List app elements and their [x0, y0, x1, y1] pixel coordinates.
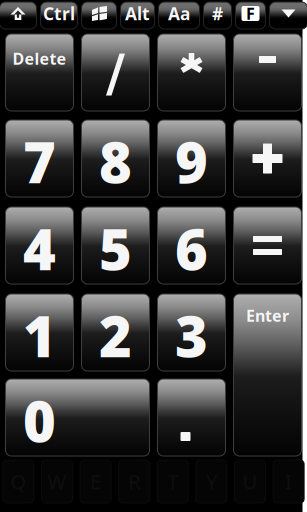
- staticText: E: [90, 468, 101, 495]
- button[interactable]: Plus: [233, 120, 301, 197]
- staticText: R: [128, 468, 140, 495]
- staticText: 4: [23, 211, 56, 286]
- staticText: 6: [175, 211, 208, 286]
- button[interactable]: 2: [81, 294, 149, 371]
- staticText: Aa: [168, 2, 190, 25]
- staticText: 8: [99, 124, 132, 199]
- button[interactable]: Alt: [120, 2, 154, 29]
- button[interactable]: Minus: [233, 34, 301, 111]
- button[interactable]: Delete: [5, 34, 73, 111]
- staticText: Alt: [125, 2, 150, 25]
- button[interactable]: Divide: [81, 34, 149, 111]
- staticText: 5: [99, 211, 132, 286]
- button[interactable]: Symbols: [203, 2, 231, 29]
- staticText: 1: [23, 298, 56, 373]
- button[interactable]: Windows: [81, 2, 116, 29]
- button[interactable]: 6: [157, 207, 225, 284]
- staticText: Delete: [12, 48, 66, 69]
- staticText: I: [285, 468, 292, 495]
- button[interactable]: 1: [5, 294, 73, 371]
- button[interactable]: Multiply: [157, 34, 225, 111]
- button[interactable]: 5: [81, 207, 149, 284]
- button[interactable]: Equals: [233, 207, 301, 284]
- staticText: 7: [23, 124, 56, 199]
- staticText: F: [246, 3, 255, 24]
- staticText: 0: [23, 383, 56, 458]
- button[interactable]: More keys: [269, 2, 307, 29]
- button[interactable]: 3: [157, 294, 225, 371]
- staticText: 2: [99, 298, 132, 373]
- button[interactable]: 4: [5, 207, 73, 284]
- button[interactable]: Control: [40, 2, 77, 29]
- button[interactable]: Font size: [158, 2, 199, 29]
- button[interactable]: 8: [81, 120, 149, 197]
- staticText: W: [47, 468, 66, 495]
- staticText: #: [212, 2, 223, 25]
- button[interactable]: 9: [157, 120, 225, 197]
- button[interactable]: 0: [5, 379, 149, 456]
- button[interactable]: Enter: [233, 294, 301, 456]
- button[interactable]: 7: [5, 120, 73, 197]
- button[interactable]: Shift: [0, 2, 36, 29]
- button[interactable]: Decimal point: [157, 379, 225, 456]
- button[interactable]: Function keys: [235, 2, 265, 29]
- staticText: Ctrl: [43, 2, 75, 25]
- staticText: 9: [175, 124, 208, 199]
- staticText: Enter: [246, 305, 289, 326]
- staticText: 3: [175, 298, 208, 373]
